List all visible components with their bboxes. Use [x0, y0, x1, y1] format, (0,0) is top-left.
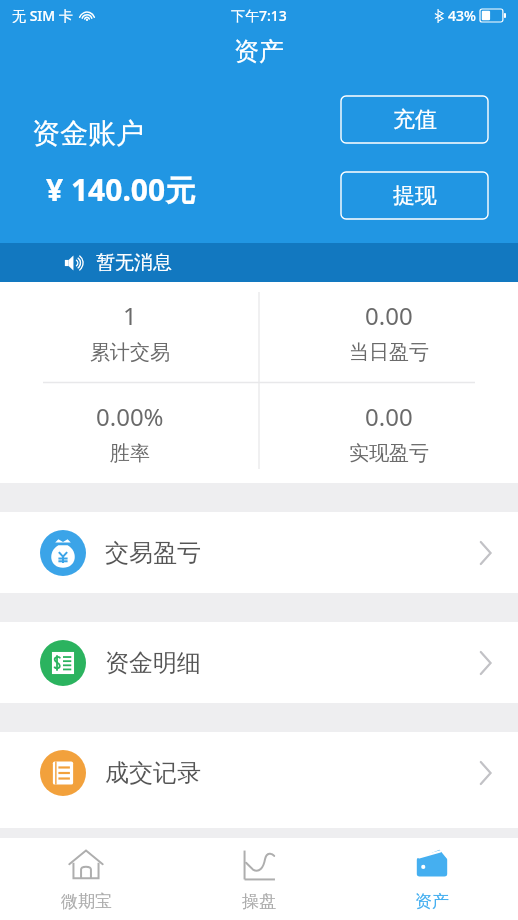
button[interactable]: 操盘 — [172, 838, 345, 920]
staticText: ¥ 140.00元 — [46, 169, 196, 210]
staticText: 资金明细 — [105, 648, 201, 678]
staticText: 当日盈亏 — [349, 340, 429, 365]
staticText: 下午7:13 — [231, 6, 287, 25]
staticText: 资产 — [234, 36, 284, 67]
staticText: 微期宝 — [61, 891, 112, 912]
staticText: 无 SIM 卡 — [12, 6, 73, 25]
staticText: 胜率 — [110, 441, 150, 466]
staticText: 充值 — [393, 106, 437, 134]
other: 资产 — [413, 846, 451, 884]
button[interactable]: 成交记录 — [0, 732, 518, 813]
staticText: 实现盈亏 — [349, 441, 429, 466]
button[interactable]: 0.00% — [0, 382, 259, 483]
staticText: 暂无消息 — [96, 251, 172, 275]
button[interactable]: 充值 — [341, 96, 488, 143]
button[interactable]: 0.00 — [259, 382, 518, 483]
staticText: 成交记录 — [105, 758, 201, 788]
button[interactable]: 提现 — [341, 172, 488, 219]
staticText: 0.00 — [365, 400, 413, 433]
staticText: 0.00 — [365, 299, 413, 332]
staticText: 资金账户 — [32, 116, 144, 151]
staticText: 43% — [448, 6, 476, 25]
button[interactable]: 1 — [0, 282, 259, 382]
button[interactable]: 资产 — [345, 838, 518, 920]
button[interactable]: 资金明细 — [0, 622, 518, 703]
staticText: 提现 — [393, 182, 437, 210]
staticText: 1 — [123, 299, 137, 332]
staticText: 0.00% — [96, 400, 164, 433]
button[interactable]: 0.00 — [259, 282, 518, 382]
button[interactable]: 交易盈亏 — [0, 512, 518, 593]
staticText: 资产 — [415, 891, 449, 912]
button[interactable]: 微期宝 — [0, 838, 172, 920]
staticText: 累计交易 — [90, 340, 170, 365]
button[interactable]: 暂无消息 — [0, 243, 518, 282]
staticText: 交易盈亏 — [105, 538, 201, 568]
staticText: 操盘 — [242, 891, 276, 912]
